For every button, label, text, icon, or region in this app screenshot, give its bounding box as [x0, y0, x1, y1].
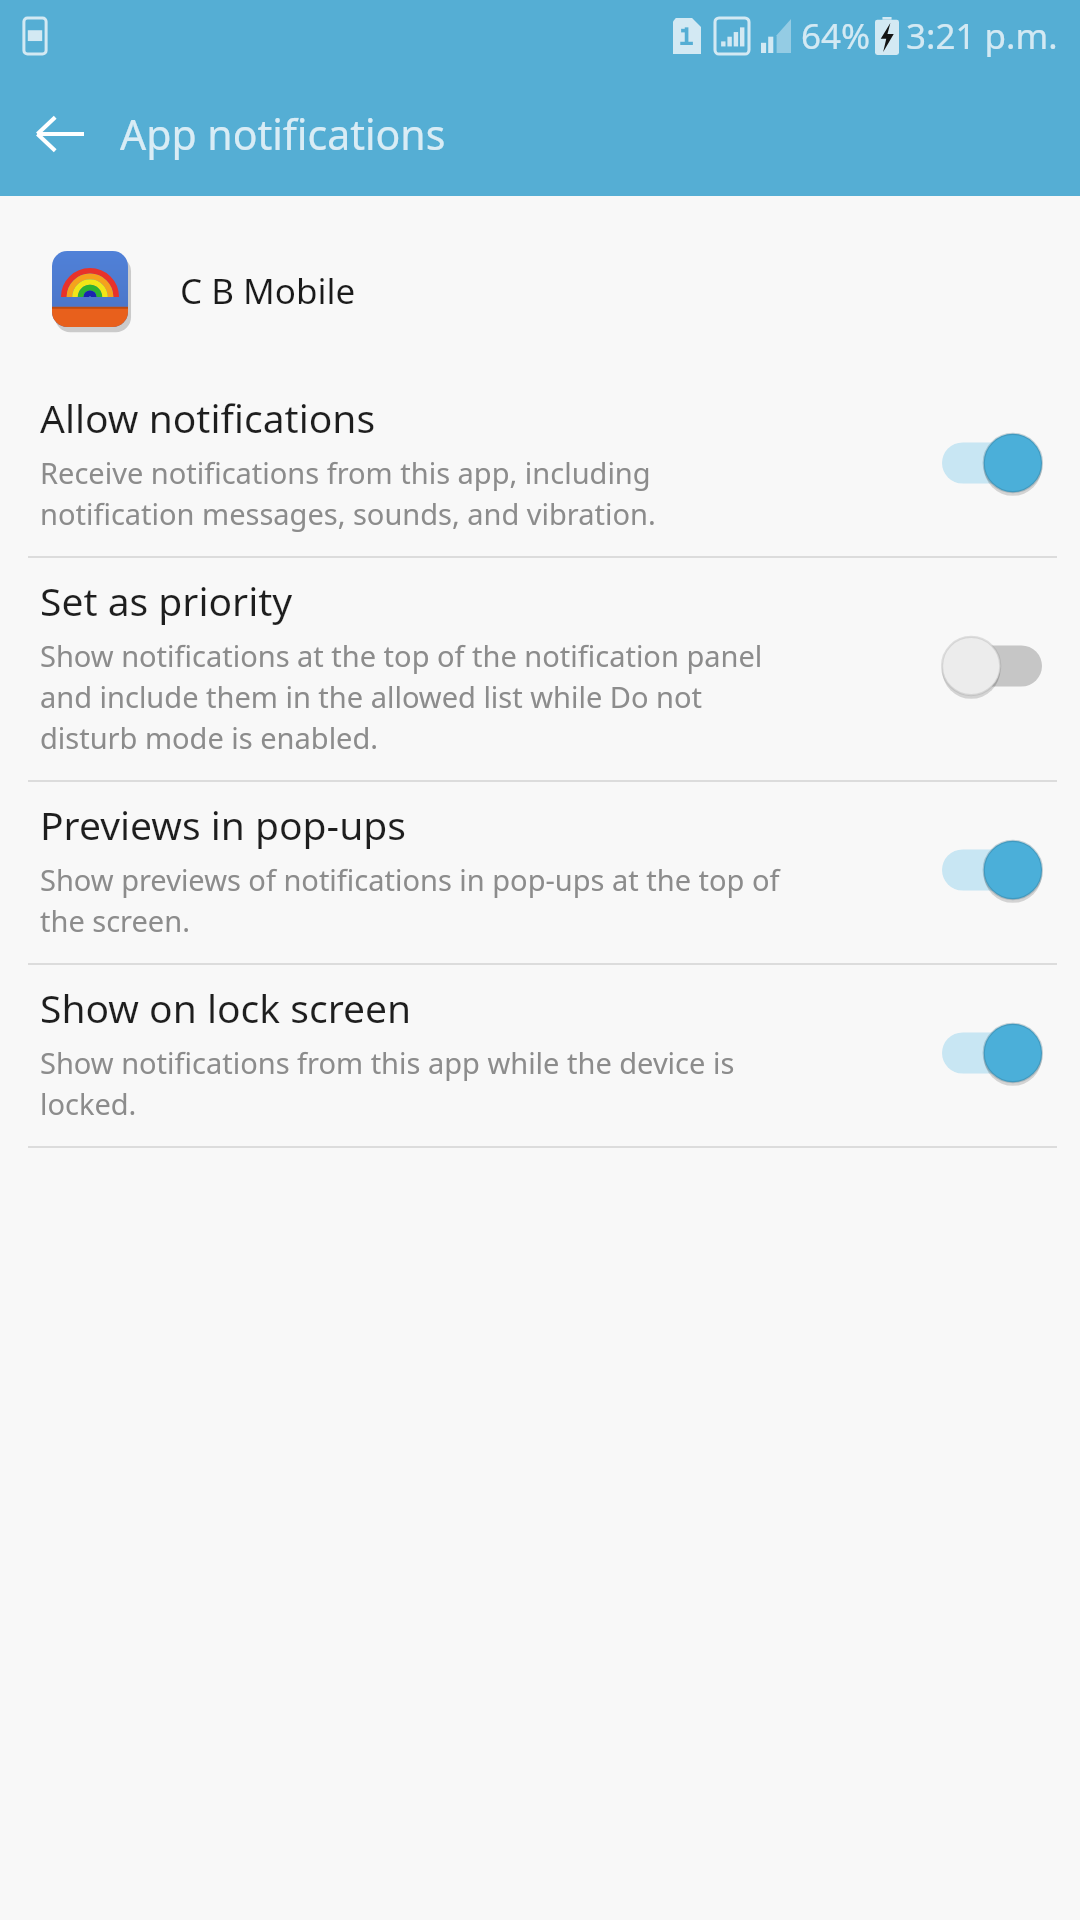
button[interactable]: Off: [936, 629, 1048, 703]
staticText: Set as priority: [40, 574, 293, 627]
button[interactable]: C B Mobile: [0, 251, 1080, 331]
button[interactable]: On: [936, 833, 1048, 907]
button[interactable]: Set as priority: [0, 558, 1080, 780]
staticText: Allow notifications: [40, 391, 376, 444]
staticText: Previews in pop-ups: [40, 798, 406, 851]
staticText: Show notifications at the top of the not…: [40, 636, 763, 758]
staticText: 64%: [801, 12, 871, 60]
button[interactable]: On: [936, 426, 1048, 500]
button[interactable]: Show on lock screen: [0, 965, 1080, 1146]
staticText: Show notifications from this app while t…: [40, 1043, 735, 1124]
button[interactable]: On: [936, 1016, 1048, 1090]
button[interactable]: Back: [18, 92, 102, 176]
staticText: Show previews of notifications in pop-up…: [40, 860, 780, 941]
button[interactable]: Allow notifications: [0, 375, 1080, 556]
staticText: Receive notifications from this app, inc…: [40, 453, 656, 534]
staticText: Show on lock screen: [40, 981, 412, 1034]
staticText: 3:21 p.m.: [906, 12, 1058, 60]
staticText: C B Mobile: [180, 267, 356, 315]
button[interactable]: Previews in pop-ups: [0, 782, 1080, 963]
staticText: App notifications: [120, 106, 446, 162]
